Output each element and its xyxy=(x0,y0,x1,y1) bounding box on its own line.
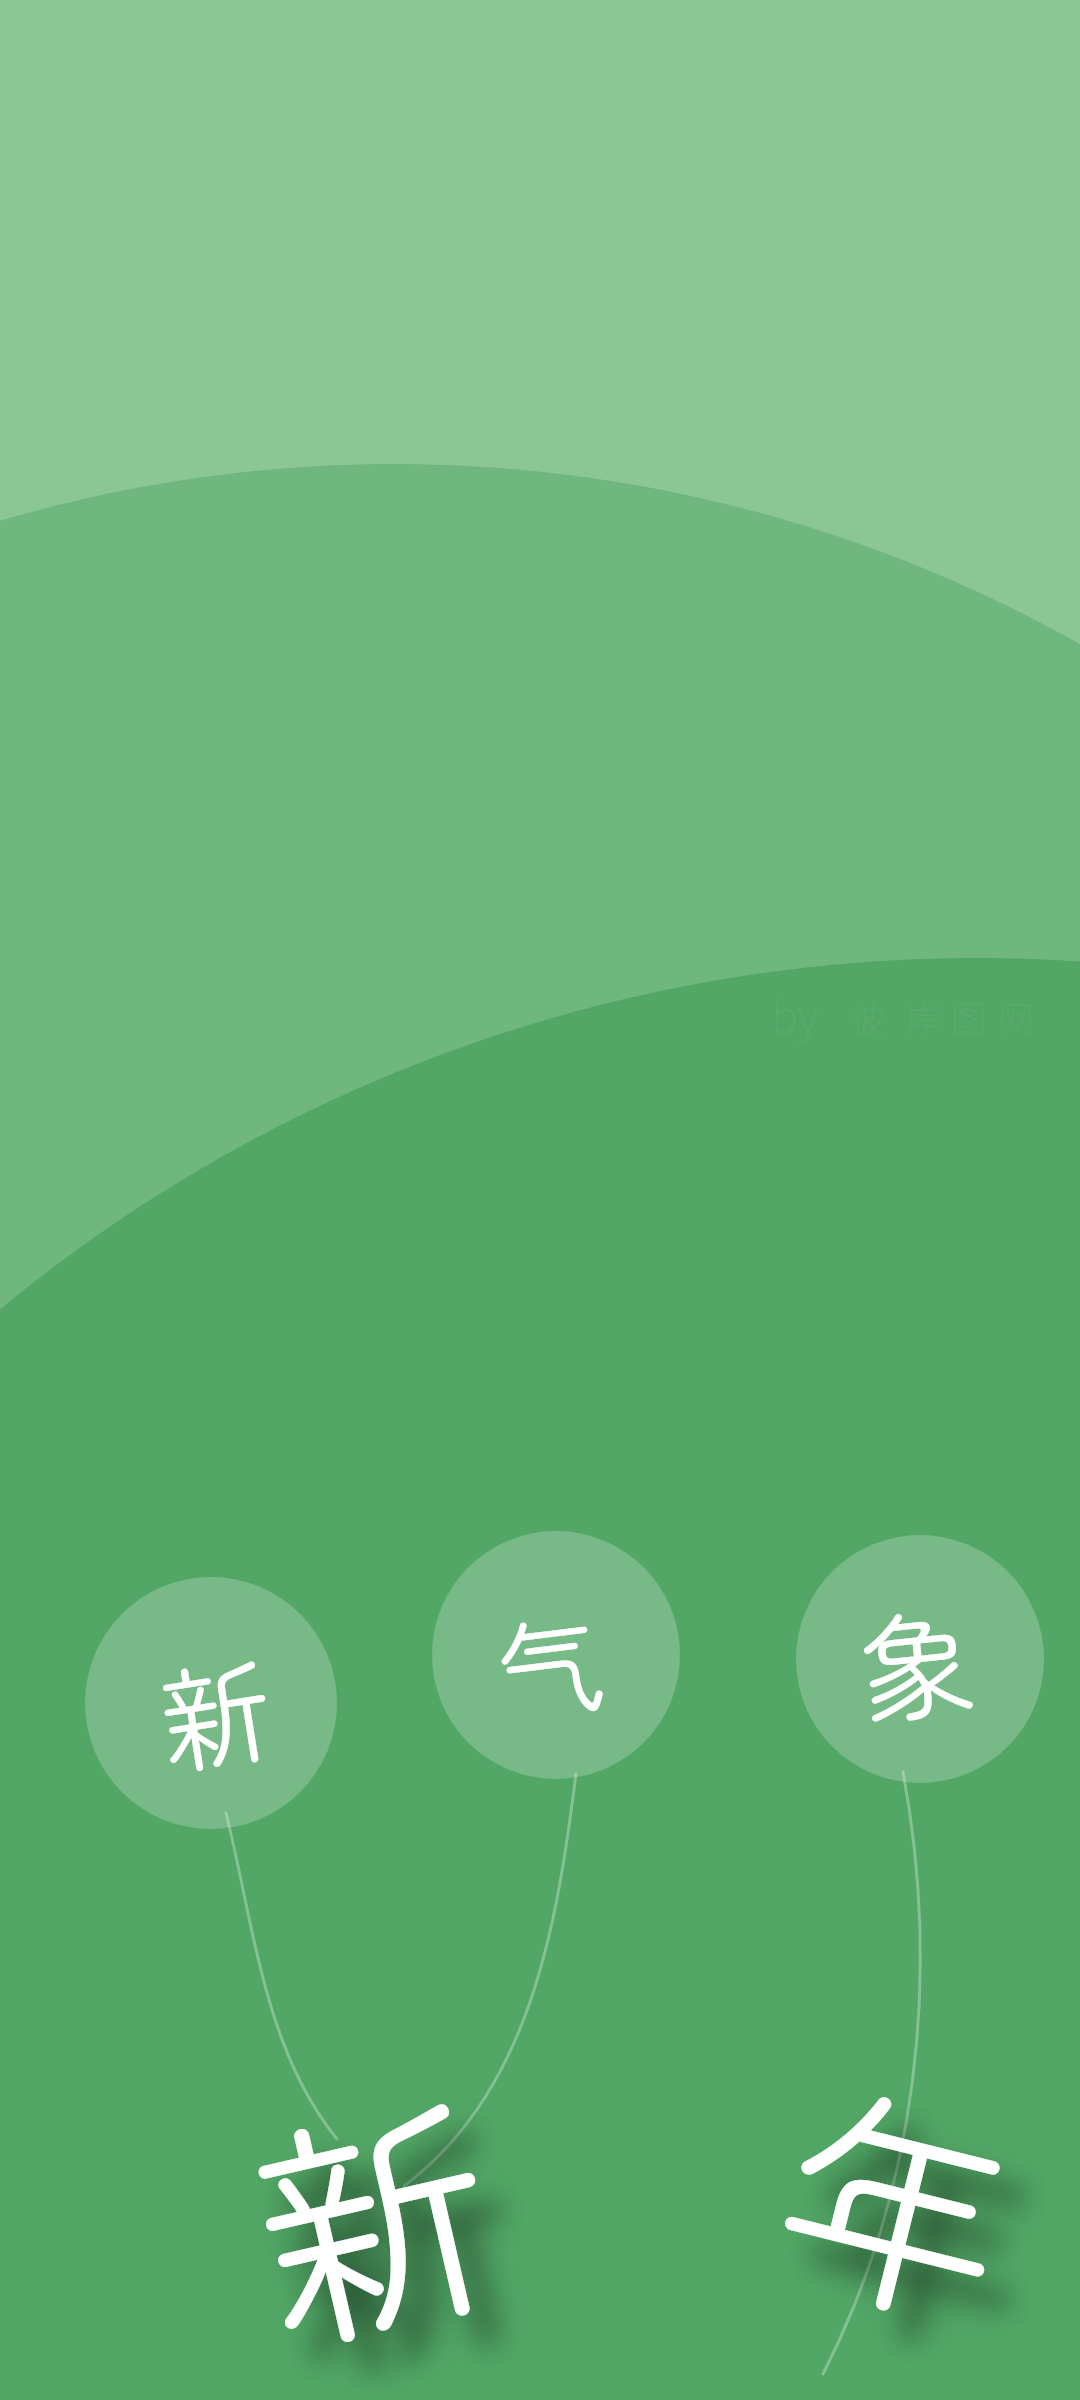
button[interactable]: 气 xyxy=(432,1531,680,1779)
button[interactable]: 象 xyxy=(796,1535,1044,1783)
button[interactable]: 新 xyxy=(85,1577,337,1829)
